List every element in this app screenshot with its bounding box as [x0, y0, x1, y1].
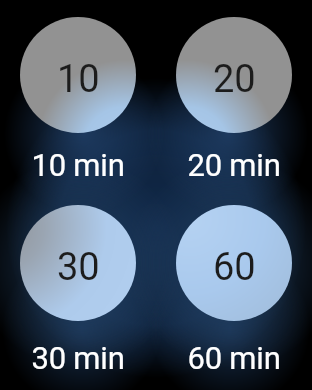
button[interactable]: 30 min	[20, 340, 136, 376]
staticText: 60 min	[187, 340, 281, 376]
staticText: 30 min	[31, 340, 125, 376]
staticText: 30	[57, 245, 100, 290]
button[interactable]: 60	[176, 205, 292, 321]
staticText: 10 min	[31, 147, 125, 183]
button[interactable]: 30	[20, 205, 136, 321]
button[interactable]: 20	[176, 17, 292, 133]
button[interactable]: 60 min	[176, 340, 292, 376]
staticText: 60	[213, 245, 256, 290]
staticText: 20	[213, 57, 256, 102]
button[interactable]: 10 min	[20, 147, 136, 183]
staticText: 20 min	[187, 147, 281, 183]
button[interactable]: 10	[20, 17, 136, 133]
staticText: 10	[57, 57, 100, 102]
button[interactable]: 20 min	[176, 147, 292, 183]
